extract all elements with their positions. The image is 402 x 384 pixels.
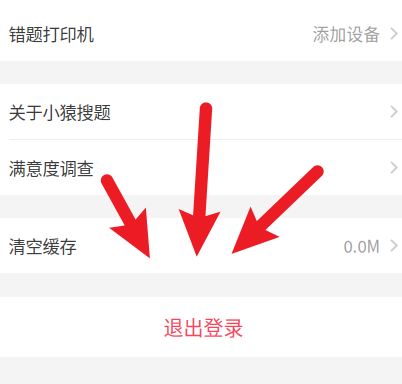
staticText: 0.0M [344,233,381,257]
staticText: 关于小猿搜题 [8,99,110,124]
button[interactable]: 清空缓存 [0,218,402,273]
button[interactable]: 错题打印机 [0,0,402,61]
staticText: 错题打印机 [8,21,93,46]
staticText: 退出登录 [163,312,243,341]
staticText: 清空缓存 [8,233,76,258]
staticText: 满意度调查 [8,155,93,180]
button[interactable]: 关于小猿搜题 [0,84,402,139]
button[interactable]: 退出登录 [0,297,402,357]
button[interactable]: 满意度调查 [0,140,402,195]
staticText: 添加设备 [313,21,381,45]
